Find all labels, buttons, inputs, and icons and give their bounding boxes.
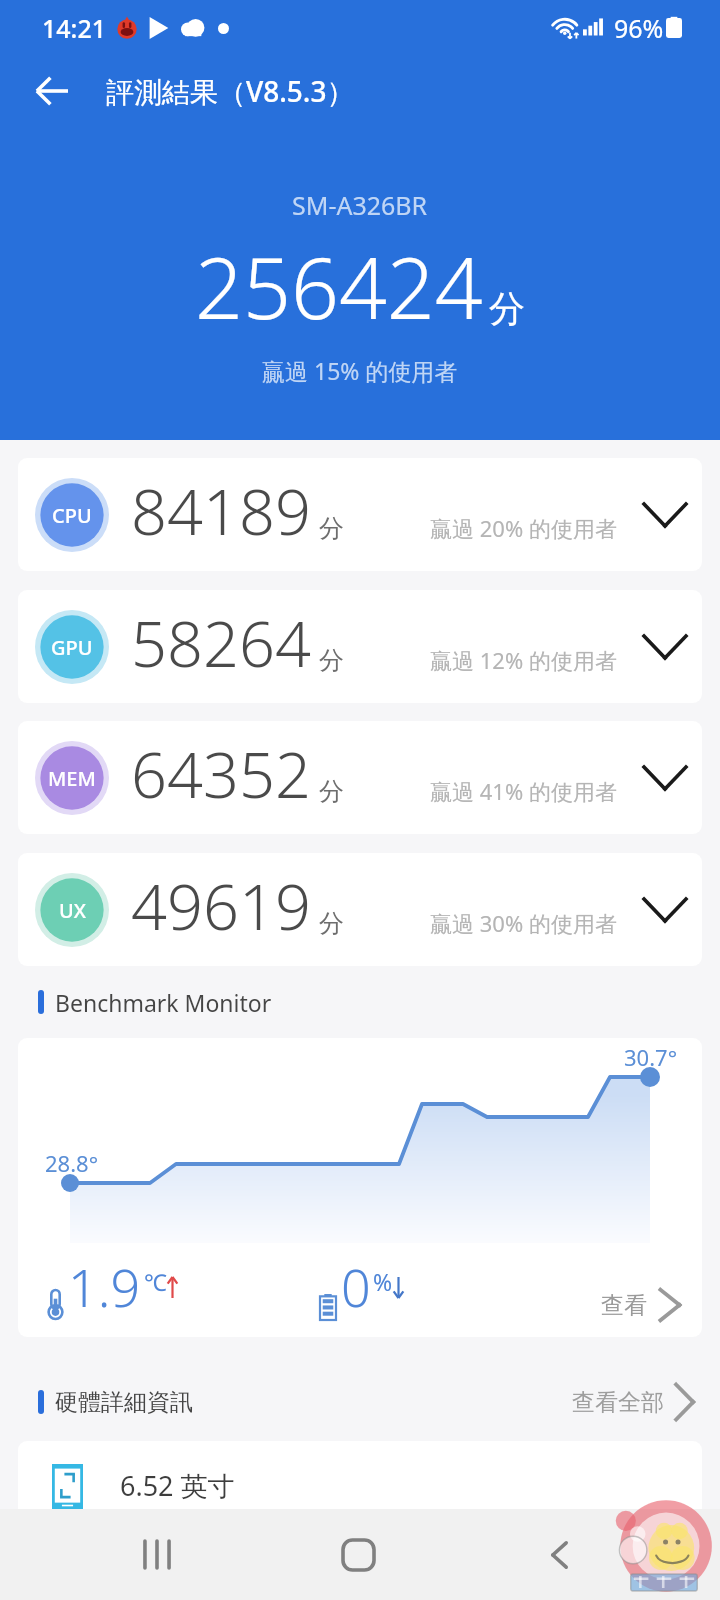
button[interactable]: Back [509,1509,609,1600]
staticText: 28.8° [45,1148,99,1178]
staticText: 58264 [131,600,311,686]
button[interactable]: 28.8° [18,1038,702,1337]
button[interactable]: 6.52 英寸 [18,1441,702,1556]
staticText: 贏過 30% 的使用者 [430,908,617,938]
staticText: 49619 [131,863,311,949]
staticText: 30.7° [624,1042,678,1072]
staticText: ℃ [144,1266,167,1297]
staticText: 硬體詳細資訊 [55,1388,193,1417]
staticText: 分 [319,908,344,939]
button[interactable]: Back [22,63,82,119]
button[interactable]: 查看全部 [572,1383,700,1421]
staticText: 分 [319,513,344,544]
button[interactable]: CPU [18,458,702,571]
button[interactable]: 查看 [601,1288,682,1322]
button[interactable]: UX [18,853,702,966]
staticText: CPU [52,502,92,529]
staticText: 0 [341,1251,371,1322]
staticText: 查看全部 [572,1388,664,1417]
button[interactable]: MEM [18,721,702,834]
button[interactable]: Home [308,1509,408,1600]
staticText: 分 [489,286,525,331]
staticText: 查看 [601,1291,647,1320]
staticText: 84189 [131,468,311,554]
staticText: 贏過 12% 的使用者 [430,645,617,675]
staticText: 分 [319,645,344,676]
staticText: 贏過 15% 的使用者 [262,355,458,386]
staticText: 評測結果（V8.5.3） [106,72,355,110]
button[interactable]: GPU [18,590,702,703]
staticText: 256424 [195,229,483,343]
staticText: GPU [51,634,93,661]
staticText: 96% [614,11,664,45]
staticText: 6.52 英寸 [120,1467,235,1504]
staticText: UX [59,897,86,924]
staticText: 64352 [131,731,311,817]
button[interactable]: Recents [107,1509,207,1600]
staticText: 贏過 20% 的使用者 [430,513,617,543]
staticText: 1.9 [68,1251,141,1322]
staticText: SM-A326BR [292,188,428,222]
staticText: 贏過 41% 的使用者 [430,776,617,806]
staticText: MEM [48,765,96,792]
staticText: 14:21 [42,11,107,45]
staticText: Benchmark Monitor [55,987,272,1018]
staticText: % [373,1266,393,1297]
staticText: 分 [319,776,344,807]
